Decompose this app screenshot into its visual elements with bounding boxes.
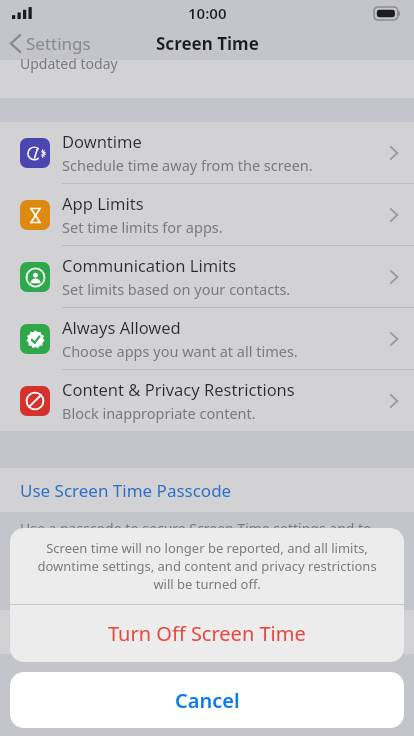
staticText: Updated today <box>20 54 118 73</box>
button[interactable]: Always Allowed <box>0 308 414 369</box>
staticText: Turn Off Screen Time <box>20 621 189 644</box>
button[interactable]: Use Screen Time Passcode <box>0 468 414 512</box>
staticText: Choose apps you want at all times. <box>62 341 298 361</box>
staticText: Use a passcode to secure Screen Time set… <box>20 519 394 574</box>
button[interactable]: Content & Privacy Restrictions <box>0 370 414 431</box>
button[interactable]: Communication Limits <box>0 246 414 307</box>
button[interactable]: Settings <box>0 28 99 59</box>
staticText: 10:00 <box>188 3 227 23</box>
staticText: Screen Time <box>156 32 259 55</box>
staticText: App Limits <box>62 192 144 214</box>
staticText: Downtime <box>62 130 142 152</box>
staticText: Set time limits for apps. <box>62 217 223 237</box>
staticText: Settings <box>26 32 91 55</box>
staticText: Cancel <box>175 687 240 714</box>
staticText: Schedule time away from the screen. <box>62 155 313 175</box>
staticText: Always Allowed <box>62 316 181 338</box>
staticText: Set limits based on your contacts. <box>62 279 291 299</box>
button[interactable]: Turn Off Screen Time <box>10 605 404 662</box>
staticText: Screen time will no longer be reported, … <box>28 539 386 593</box>
staticText: Communication Limits <box>62 254 237 276</box>
button[interactable]: Cancel <box>10 672 404 728</box>
button[interactable]: App Limits <box>0 184 414 245</box>
staticText: Block inappropriate content. <box>62 403 256 423</box>
staticText: Turn Off Screen Time <box>108 620 306 647</box>
staticText: Content & Privacy Restrictions <box>62 378 295 400</box>
button[interactable]: Downtime <box>0 122 414 183</box>
staticText: Use Screen Time Passcode <box>20 479 232 502</box>
